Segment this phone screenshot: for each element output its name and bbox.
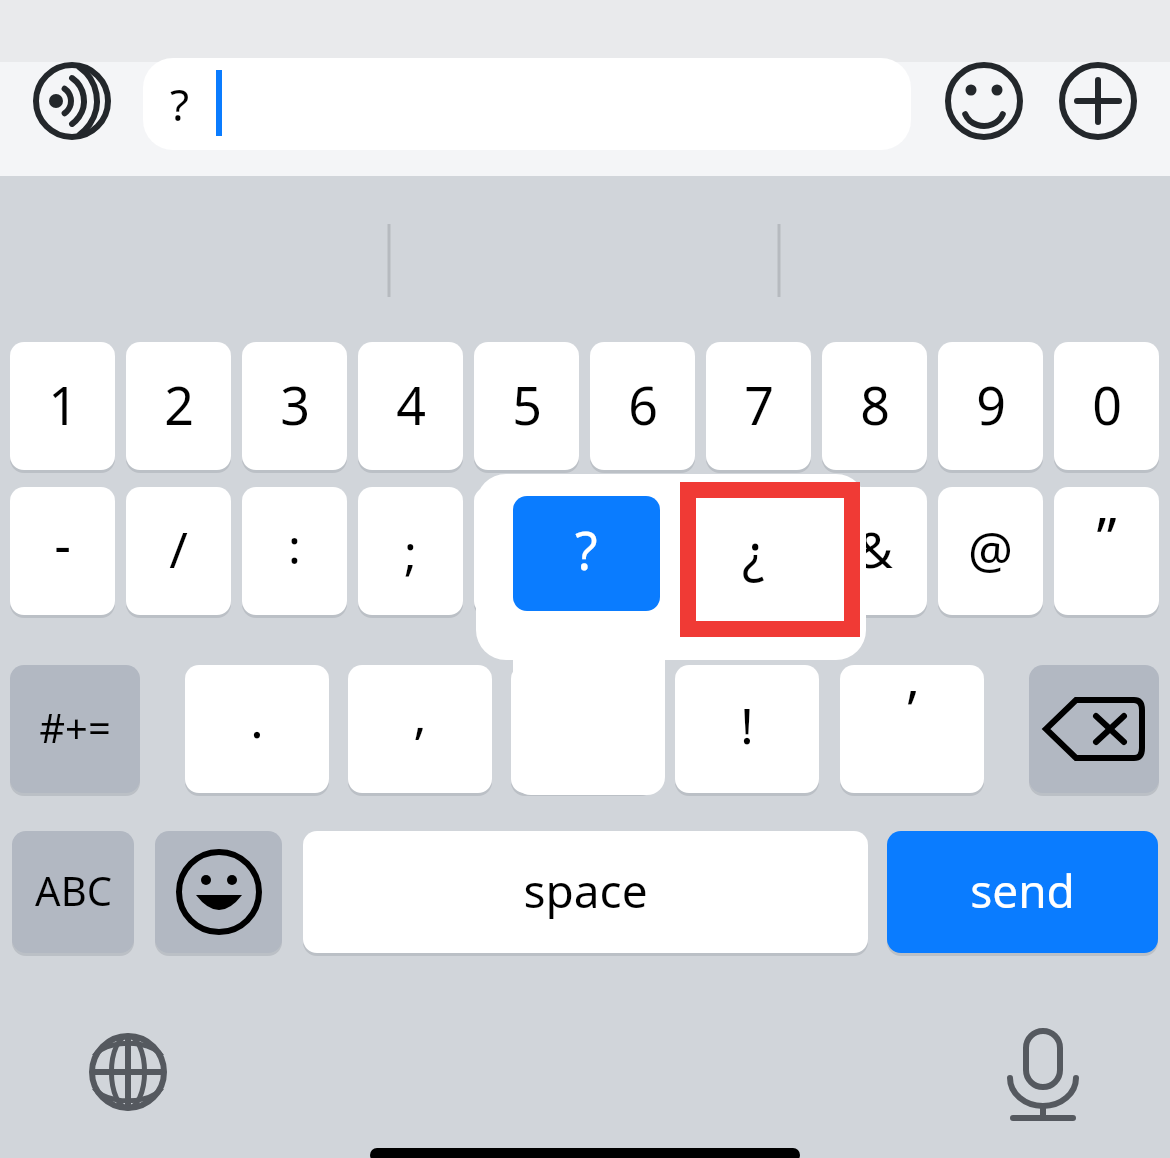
button[interactable]: !	[675, 665, 819, 793]
staticText: ,	[413, 681, 427, 749]
staticText: 6	[628, 369, 658, 440]
button[interactable]: 1	[10, 342, 115, 470]
button[interactable]: @	[938, 487, 1043, 615]
staticText: ABC	[35, 863, 112, 917]
button[interactable]: ?	[511, 665, 655, 793]
staticText: &	[856, 515, 893, 583]
staticText: 1	[48, 369, 78, 440]
button[interactable]: 8	[822, 342, 927, 470]
button[interactable]: .	[185, 665, 329, 793]
button[interactable]: 2	[126, 342, 231, 470]
button[interactable]: ;	[358, 487, 463, 615]
staticText: space	[523, 859, 648, 922]
button[interactable]: Switch keyboard language	[88, 1032, 168, 1112]
staticText: 3	[280, 369, 310, 440]
button[interactable]: ,	[348, 665, 492, 793]
staticText: send	[970, 859, 1075, 922]
button[interactable]: Emoji	[945, 62, 1023, 140]
button[interactable]: space	[303, 831, 868, 953]
button[interactable]: 9	[938, 342, 1043, 470]
button[interactable]: :	[242, 487, 347, 615]
button[interactable]: &	[822, 487, 927, 615]
button[interactable]: $	[706, 487, 811, 615]
staticText: 4	[396, 369, 426, 440]
staticText: -	[54, 508, 71, 579]
staticText: 0	[1092, 369, 1122, 440]
staticText: ’	[907, 672, 917, 746]
button[interactable]: ”	[1054, 487, 1159, 615]
staticText: @	[968, 515, 1013, 583]
button[interactable]: /	[126, 487, 231, 615]
button[interactable]: 3	[242, 342, 347, 470]
staticText: 9	[976, 369, 1006, 440]
button[interactable]: -	[10, 487, 115, 615]
staticText: 5	[512, 369, 542, 440]
button[interactable]: Audio message	[33, 62, 111, 140]
button[interactable]: ?	[513, 496, 660, 611]
staticText: /	[169, 515, 188, 583]
staticText: !	[740, 691, 754, 759]
button[interactable]: ’	[840, 665, 984, 793]
staticText: 7	[744, 369, 774, 440]
button[interactable]: ¿	[680, 496, 827, 611]
button[interactable]: Backspace	[1029, 665, 1159, 793]
staticText: ?	[170, 74, 190, 134]
button[interactable]: #+=	[10, 665, 140, 793]
button[interactable]	[143, 58, 911, 150]
button[interactable]: Add attachment	[1059, 62, 1137, 140]
staticText: .	[250, 685, 264, 753]
staticText: #+=	[39, 700, 111, 754]
button[interactable]: (	[474, 487, 579, 615]
staticText: $	[745, 517, 773, 582]
button[interactable]: 0	[1054, 342, 1159, 470]
button[interactable]: send	[887, 831, 1158, 953]
button[interactable]: Dictate	[1003, 1026, 1083, 1120]
staticText: ;	[404, 519, 417, 584]
button[interactable]: 4	[358, 342, 463, 470]
staticText: ”	[1096, 499, 1117, 575]
staticText: ?	[575, 514, 598, 585]
button[interactable]: ABC	[12, 831, 134, 953]
button[interactable]: )	[590, 487, 695, 615]
button[interactable]: 5	[474, 342, 579, 470]
staticText: ¿	[742, 516, 765, 587]
staticText: :	[288, 513, 301, 578]
button[interactable]: 7	[706, 342, 811, 470]
staticText: 8	[860, 369, 890, 440]
staticText: 2	[164, 369, 194, 440]
button[interactable]: 6	[590, 342, 695, 470]
button[interactable]: Emoji keyboard	[155, 831, 282, 953]
